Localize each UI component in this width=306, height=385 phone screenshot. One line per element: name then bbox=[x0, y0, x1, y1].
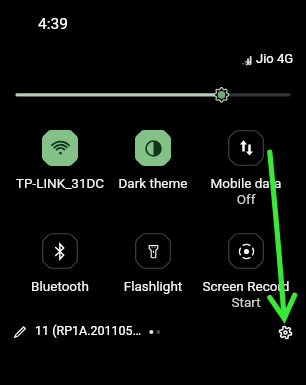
staticText: Screen Record bbox=[200, 278, 292, 294]
staticText: Start bbox=[200, 294, 292, 310]
staticText: Jio 4G bbox=[256, 51, 294, 66]
staticText: 4:39 bbox=[38, 15, 68, 33]
staticText: Off bbox=[200, 191, 292, 207]
staticText: Bluetooth bbox=[14, 278, 106, 294]
staticText: Flashlight bbox=[107, 278, 199, 294]
button[interactable]: Flashlight bbox=[107, 233, 199, 294]
button[interactable]: Settings bbox=[274, 321, 296, 343]
button[interactable]: Screen Record bbox=[200, 233, 292, 310]
button[interactable]: Edit bbox=[11, 323, 29, 341]
staticText: 11 (RP1A.201105… bbox=[35, 323, 142, 338]
button[interactable]: TP-LINK_31DC bbox=[14, 130, 106, 191]
staticText: Dark theme bbox=[107, 175, 199, 191]
button[interactable]: Brightness bbox=[0, 85, 306, 105]
button[interactable]: Mobile data bbox=[200, 130, 292, 207]
button[interactable]: Bluetooth bbox=[14, 233, 106, 294]
staticText: Mobile data bbox=[200, 175, 292, 191]
staticText: TP-LINK_31DC bbox=[14, 175, 106, 191]
button[interactable]: Dark theme bbox=[107, 130, 199, 191]
